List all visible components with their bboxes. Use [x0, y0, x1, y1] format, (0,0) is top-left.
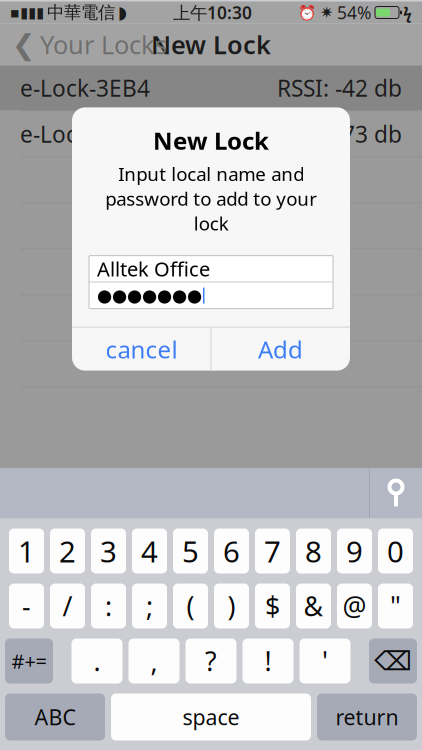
- button[interactable]: ': [299, 638, 350, 683]
- button[interactable]: .: [71, 638, 122, 683]
- button[interactable]: ;: [132, 583, 167, 628]
- button[interactable]: (: [173, 583, 208, 628]
- staticText: Add: [258, 333, 303, 365]
- staticText: Input local name and password to add to …: [105, 161, 317, 236]
- button[interactable]: :: [91, 583, 126, 628]
- button[interactable]: ❮: [0, 22, 167, 67]
- staticText: e-Lock-3EB4: [20, 73, 150, 103]
- staticText: return: [335, 703, 398, 731]
- staticText: !: [264, 643, 271, 679]
- staticText: 4: [141, 531, 158, 570]
- button[interactable]: return: [317, 693, 417, 740]
- staticText: ◗: [118, 3, 127, 22]
- staticText: Alltek Office: [97, 255, 210, 282]
- button[interactable]: -: [9, 583, 44, 628]
- button[interactable]: #+=: [5, 638, 53, 683]
- staticText: #+=: [11, 648, 46, 674]
- button[interactable]: 0: [378, 528, 413, 573]
- staticText: 6: [223, 531, 240, 570]
- button[interactable]: ,: [128, 638, 179, 683]
- button[interactable]: &: [296, 583, 331, 628]
- staticText: 5: [182, 531, 199, 570]
- staticText: (: [186, 588, 194, 624]
- staticText: 54%: [337, 1, 371, 24]
- button[interactable]: 9: [337, 528, 372, 573]
- button[interactable]: 3: [91, 528, 126, 573]
- button[interactable]: ABC: [5, 693, 105, 740]
- button[interactable]: 2: [50, 528, 85, 573]
- button[interactable]: ?: [185, 638, 236, 683]
- button[interactable]: ): [214, 583, 249, 628]
- button[interactable]: $: [255, 583, 290, 628]
- staticText: 8: [305, 531, 322, 570]
- button[interactable]: cancel: [72, 328, 210, 371]
- staticText: ϟ: [403, 2, 412, 23]
- button[interactable]: 4: [132, 528, 167, 573]
- staticText: ✷: [320, 3, 333, 22]
- staticText: e-Lock-7897: [20, 119, 148, 149]
- staticText: ': [322, 643, 328, 679]
- staticText: 7: [264, 531, 281, 570]
- button[interactable]: Delete: [369, 638, 417, 683]
- staticText: New Lock: [153, 124, 269, 156]
- button[interactable]: Add: [211, 328, 349, 371]
- staticText: .: [93, 643, 100, 679]
- staticText: &: [303, 588, 323, 624]
- staticText: 上午10:30: [173, 1, 252, 24]
- staticText: 中華電信: [47, 2, 115, 23]
- button[interactable]: @: [337, 583, 372, 628]
- staticText: ⏰: [298, 4, 316, 21]
- staticText: :: [105, 588, 112, 624]
- staticText: 9: [346, 531, 363, 570]
- staticText: ,: [150, 643, 157, 679]
- staticText: 2: [59, 531, 76, 570]
- staticText: cancel: [105, 333, 177, 365]
- button[interactable]: !: [242, 638, 293, 683]
- button[interactable]: /: [50, 583, 85, 628]
- staticText: ABC: [34, 703, 75, 731]
- staticText: -: [22, 588, 31, 624]
- staticText: ?: [205, 643, 217, 679]
- staticText: 1: [18, 531, 35, 570]
- button[interactable]: 7: [255, 528, 290, 573]
- staticText: Your Locks: [40, 28, 167, 61]
- staticText: ": [390, 588, 401, 624]
- staticText: $: [265, 588, 280, 624]
- staticText: ❮: [12, 29, 35, 60]
- button[interactable]: 5: [173, 528, 208, 573]
- staticText: ●●●●●●●: [97, 286, 202, 305]
- staticText: ⌫: [374, 646, 412, 676]
- button[interactable]: ": [378, 583, 413, 628]
- staticText: 0: [387, 531, 404, 570]
- button[interactable]: Passwords: [370, 468, 422, 518]
- staticText: New Lock: [151, 28, 271, 61]
- button[interactable]: 8: [296, 528, 331, 573]
- button[interactable]: 1: [9, 528, 44, 573]
- button[interactable]: space: [111, 693, 311, 740]
- staticText: 3: [100, 531, 117, 570]
- staticText: ): [227, 588, 235, 624]
- staticText: space: [182, 703, 239, 731]
- staticText: ;: [146, 588, 153, 624]
- staticText: RSSI: -73 db: [277, 119, 402, 149]
- button[interactable]: 6: [214, 528, 249, 573]
- staticText: RSSI: -42 db: [277, 73, 402, 103]
- staticText: ▪▮▮▮: [10, 4, 44, 21]
- staticText: /: [62, 588, 72, 624]
- staticText: @: [342, 588, 366, 624]
